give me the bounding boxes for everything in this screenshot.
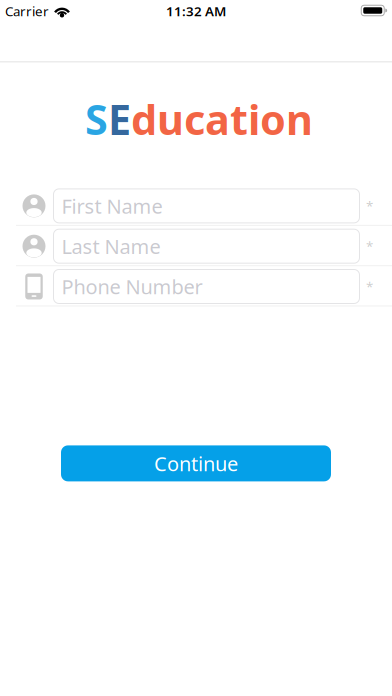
- staticText: *: [366, 197, 373, 215]
- staticText: 11:32 AM: [166, 2, 226, 20]
- button[interactable]: Continue: [61, 445, 331, 481]
- button[interactable]: Phone Number: [53, 269, 359, 303]
- staticText: Last Name: [61, 233, 160, 259]
- staticText: Continue: [154, 450, 238, 477]
- staticText: E: [108, 91, 131, 146]
- staticText: ducation: [131, 91, 313, 146]
- button[interactable]: Last Name: [53, 229, 359, 263]
- staticText: Carrier: [5, 2, 49, 20]
- staticText: *: [366, 237, 373, 255]
- staticText: S: [85, 91, 108, 146]
- staticText: First Name: [61, 193, 162, 219]
- staticText: *: [366, 278, 373, 295]
- staticText: Phone Number: [61, 273, 202, 300]
- button[interactable]: First Name: [53, 189, 359, 223]
